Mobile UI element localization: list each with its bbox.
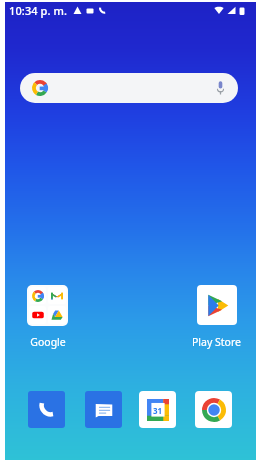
staticText: Play Store	[192, 335, 241, 349]
button[interactable]: Chrome	[195, 391, 232, 428]
button[interactable]: Calendar	[139, 391, 176, 428]
staticText: 10:34 p. m.	[9, 3, 68, 18]
button[interactable]: Search	[20, 73, 238, 103]
button[interactable]: Play Store	[191, 285, 242, 349]
button[interactable]: Google	[22, 285, 73, 349]
staticText: 31	[153, 405, 163, 416]
button[interactable]: Phone	[28, 391, 65, 428]
staticText: Google	[30, 335, 66, 349]
button[interactable]: Messages	[85, 391, 122, 428]
